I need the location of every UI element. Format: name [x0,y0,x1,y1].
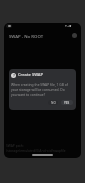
staticText: NO [51,101,56,105]
button[interactable]: YES [61,100,73,105]
staticText: your storage will be consumed. Do [11,87,65,91]
staticText: /storage/emulated/0/Android/swapfile [6,148,66,152]
staticText: Create SWAP [18,72,44,78]
button[interactable]: Settings [70,31,79,40]
staticText: When creating the SWAP file, 1 GB of [11,82,68,86]
staticText: SWAP - No ROOT [9,33,44,39]
button[interactable]: NO [48,100,58,105]
staticText: SWAP path: [6,143,24,147]
staticText: YES [64,101,70,105]
staticText: ? [13,73,15,78]
staticText: you want to continue? [11,92,46,96]
